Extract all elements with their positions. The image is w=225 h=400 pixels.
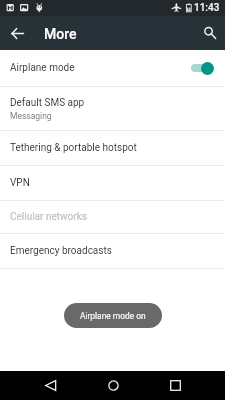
staticText: Cellular networks [10, 211, 87, 223]
staticText: Default SMS app [10, 97, 85, 109]
staticText: Airplane mode [10, 62, 75, 74]
staticText: VPN [10, 177, 30, 189]
button[interactable]: Tethering & portable hotspot [0, 131, 225, 165]
button[interactable]: Cellular networks [0, 201, 225, 233]
staticText: Emergency broadcasts [10, 245, 112, 257]
staticText: Airplane mode on [80, 311, 146, 321]
button[interactable]: Back [35, 371, 65, 400]
button[interactable]: Default SMS app [0, 87, 225, 130]
button[interactable]: Home [98, 371, 128, 400]
button[interactable]: Emergency broadcasts [0, 234, 225, 268]
staticText: 11:43 [194, 2, 220, 14]
button[interactable]: Search [193, 16, 225, 50]
button[interactable]: Navigate up [0, 16, 34, 50]
staticText: More [44, 26, 77, 42]
staticText: Tethering & portable hotspot [10, 142, 137, 154]
button[interactable]: Airplane mode [0, 50, 225, 86]
staticText: Messaging [10, 111, 52, 121]
button[interactable]: Recent apps [160, 371, 190, 400]
button[interactable]: VPN [0, 166, 225, 200]
